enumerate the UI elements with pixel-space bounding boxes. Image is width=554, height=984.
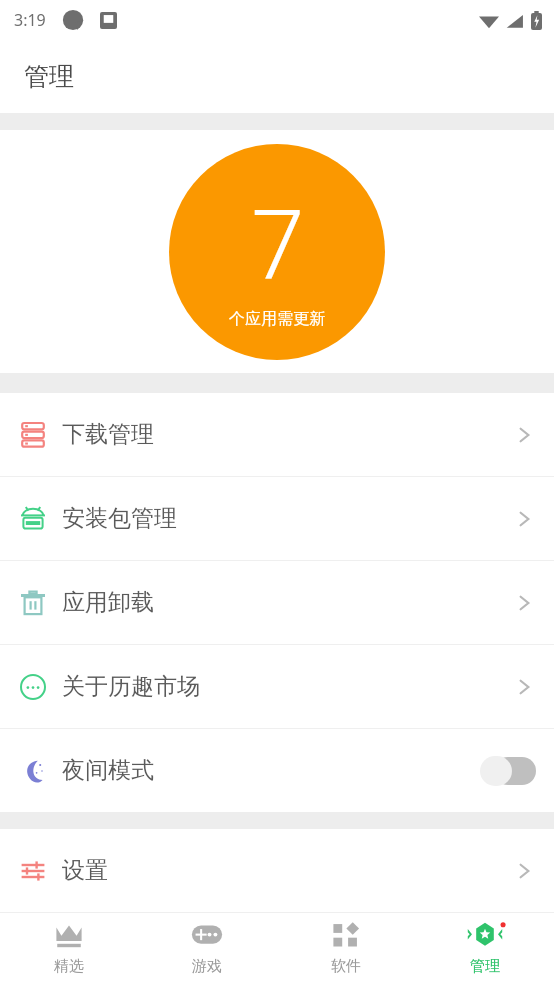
button[interactable]: 夜间模式 — [0, 729, 554, 812]
button[interactable]: 7 — [169, 144, 385, 360]
staticText: 管理 — [470, 957, 500, 976]
button[interactable]: 软件 — [276, 912, 415, 984]
button[interactable]: 精选 — [0, 912, 138, 984]
staticText: 安装包管理 — [62, 504, 177, 533]
staticText: 管理 — [24, 61, 74, 92]
button[interactable]: 安装包管理 — [0, 477, 554, 560]
staticText: 软件 — [331, 957, 361, 976]
button[interactable]: 关于历趣市场 — [0, 645, 554, 728]
staticText: 7 — [250, 176, 305, 307]
staticText: 下载管理 — [62, 420, 154, 449]
button[interactable]: 游戏 — [138, 912, 276, 984]
staticText: 夜间模式 — [62, 756, 154, 785]
staticText: 设置 — [62, 856, 108, 885]
button[interactable]: 下载管理 — [0, 393, 554, 476]
button[interactable]: 应用卸载 — [0, 561, 554, 644]
staticText: 关于历趣市场 — [62, 672, 200, 701]
staticText: 应用卸载 — [62, 588, 154, 617]
staticText: 3:19 — [14, 9, 46, 31]
button[interactable]: 设置 — [0, 829, 554, 912]
staticText: 游戏 — [192, 957, 222, 976]
staticText: 精选 — [54, 957, 84, 976]
button[interactable]: 管理 — [415, 912, 554, 984]
staticText: 个应用需更新 — [229, 309, 325, 329]
